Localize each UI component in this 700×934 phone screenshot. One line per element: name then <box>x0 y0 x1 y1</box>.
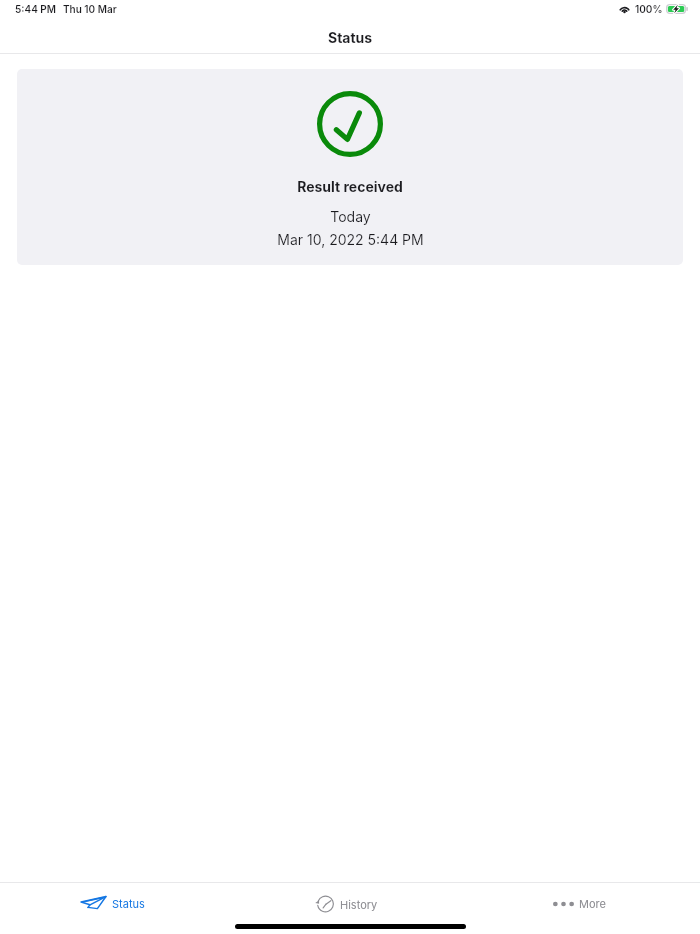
button[interactable]: History <box>234 883 467 924</box>
staticText: History <box>340 898 378 911</box>
staticText: Status <box>328 29 373 46</box>
staticText: Today <box>330 208 371 225</box>
button[interactable]: Status <box>0 883 234 924</box>
staticText: Mar 10, 2022 5:44 PM <box>277 231 424 248</box>
staticText: Result received <box>297 178 403 195</box>
staticText: Status <box>112 897 145 910</box>
button[interactable]: More <box>467 883 700 924</box>
staticText: 100% <box>635 3 663 15</box>
staticText: Thu 10 Mar <box>63 3 117 15</box>
staticText: 5:44 PM <box>15 3 56 15</box>
staticText: More <box>579 897 606 910</box>
button[interactable]: Result received <box>17 69 683 265</box>
